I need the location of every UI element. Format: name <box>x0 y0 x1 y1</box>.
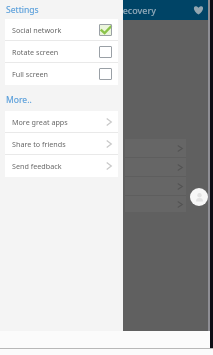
button[interactable]: More great apps <box>5 111 118 132</box>
staticText: More.. <box>6 94 32 106</box>
button[interactable]: Full screen <box>5 63 118 84</box>
staticText: More great apps <box>12 117 68 127</box>
staticText: Send feedback <box>12 161 62 171</box>
staticText: Rotate screen <box>12 47 59 57</box>
button[interactable]: Favourite <box>189 1 207 19</box>
staticText: Recovery <box>117 4 157 16</box>
staticText: Full screen <box>12 69 49 79</box>
staticText: Share to friends <box>12 139 66 149</box>
button[interactable]: Share to friends <box>5 133 118 154</box>
button[interactable]: Social network <box>5 19 118 40</box>
button[interactable]: Account <box>190 188 208 206</box>
staticText: Settings <box>6 4 39 16</box>
staticText: Social network <box>12 25 62 35</box>
button[interactable]: Rotate screen <box>5 41 118 62</box>
button[interactable]: Send feedback <box>5 155 118 176</box>
